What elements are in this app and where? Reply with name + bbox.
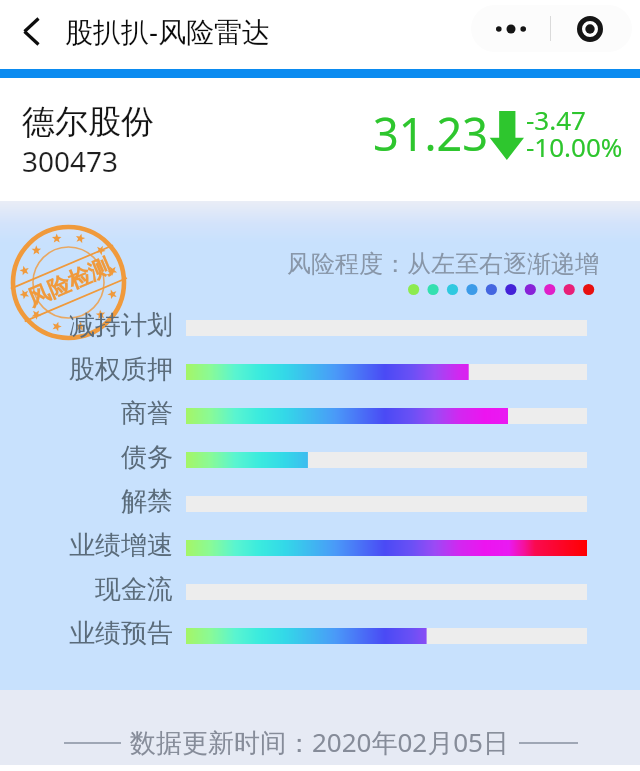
button[interactable]: 关闭: [549, 5, 630, 52]
button[interactable]: 更多: [471, 5, 550, 52]
staticText: 31.23: [373, 103, 489, 164]
staticText: 业绩预告: [69, 617, 173, 650]
staticText: 300473: [22, 142, 119, 180]
staticText: -3.47: [526, 102, 586, 137]
staticText: 债务: [121, 441, 173, 474]
staticText: 解禁: [121, 485, 173, 518]
staticText: 股扒扒-风险雷达: [65, 12, 271, 50]
staticText: 风险程度：从左至右逐渐递增: [287, 249, 599, 279]
staticText: 风险检测: [23, 253, 115, 313]
button[interactable]: 返回: [8, 8, 54, 54]
staticText: -10.00%: [526, 129, 623, 164]
staticText: 减持计划: [69, 309, 173, 342]
staticText: 数据更新时间：2020年02月05日: [130, 724, 509, 760]
staticText: 股权质押: [69, 353, 173, 386]
staticText: 德尔股份: [22, 101, 154, 143]
staticText: 现金流: [95, 573, 173, 606]
staticText: 商誉: [121, 397, 173, 430]
staticText: 业绩增速: [69, 529, 173, 562]
